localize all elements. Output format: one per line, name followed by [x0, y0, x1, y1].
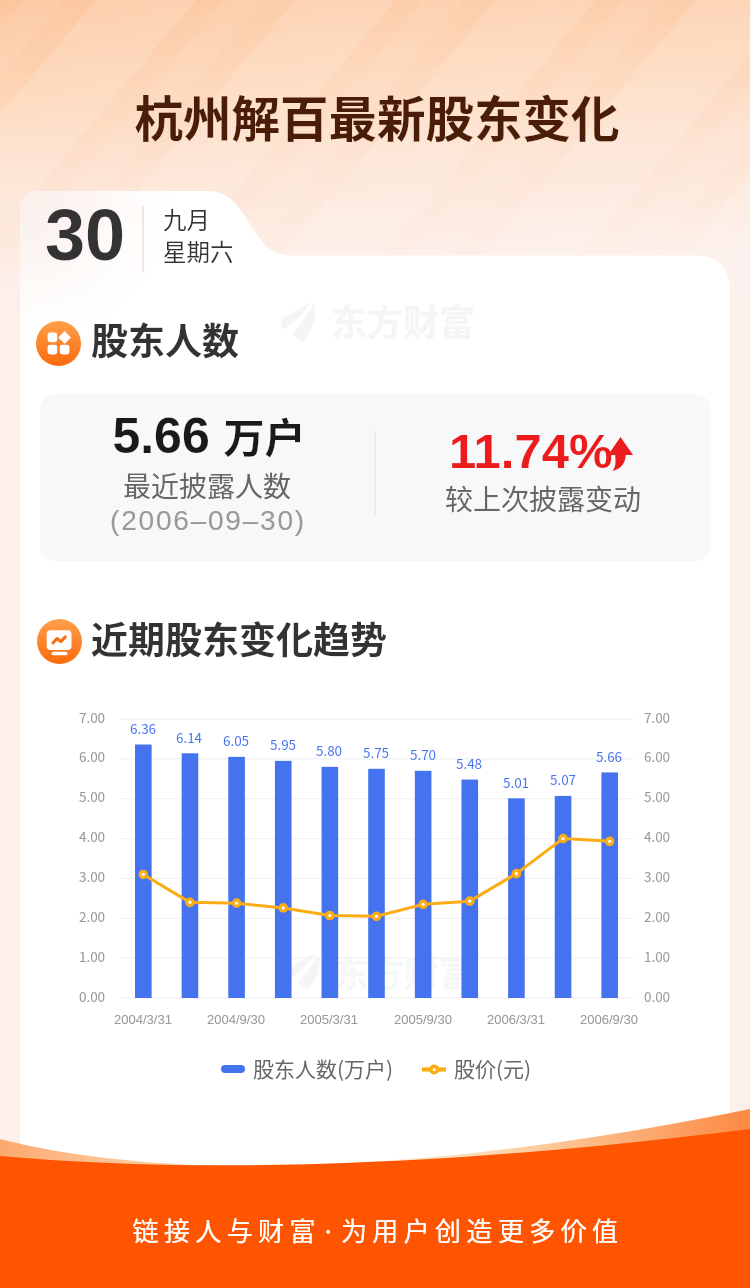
staticText: 股东人数	[91, 312, 239, 366]
staticText: 4.00	[627, 826, 687, 846]
staticText: 6.00	[627, 746, 687, 766]
staticText: 7.00	[62, 707, 122, 727]
staticText: 近期股东变化趋势	[91, 611, 387, 665]
staticText: 2006/9/30	[549, 1012, 669, 1027]
staticText: 2005/3/31	[269, 1012, 389, 1027]
staticText: 5.00	[627, 786, 687, 806]
staticText: 30	[45, 195, 126, 275]
staticText: 2006/3/31	[456, 1012, 576, 1027]
staticText: 6.05	[201, 730, 271, 750]
staticText: 0.00	[627, 986, 687, 1006]
staticText: 5.66 万户	[39, 405, 379, 464]
staticText: 2004/3/31	[83, 1012, 203, 1027]
staticText: 11.74%	[449, 424, 613, 479]
staticText: 2.00	[62, 906, 122, 926]
staticText: 较上次披露变动	[373, 478, 713, 519]
other: 股东人数图标	[36, 321, 81, 366]
staticText: 5.07	[528, 769, 598, 789]
staticText: 7.00	[627, 707, 687, 727]
staticText: 6.14	[154, 727, 224, 747]
staticText: 5.70	[388, 744, 458, 764]
staticText: 2004/9/30	[176, 1012, 296, 1027]
staticText: 链接人与财富·为用户创造更多价值	[28, 1211, 728, 1249]
staticText: 星期六	[163, 234, 234, 268]
other: 趋势图标	[37, 619, 82, 664]
button[interactable]: 趋势图标	[37, 609, 390, 666]
staticText: 6.36	[108, 718, 178, 738]
staticText: 5.95	[248, 734, 318, 754]
staticText: (2006–09–30)	[38, 505, 378, 536]
staticText: 1.00	[62, 946, 122, 966]
staticText: 5.75	[341, 742, 411, 762]
staticText: 3.00	[627, 866, 687, 886]
staticText: 0.00	[62, 986, 122, 1006]
staticText: 5.00	[62, 786, 122, 806]
staticText: 东方财富	[331, 294, 476, 346]
staticText: 5.66	[574, 746, 644, 766]
staticText: 1.00	[627, 946, 687, 966]
staticText: 东方财富	[334, 946, 475, 997]
staticText: 杭州解百最新股东变化	[27, 81, 727, 151]
staticText: 6.00	[62, 746, 122, 766]
button[interactable]: 股东人数图标	[36, 310, 242, 367]
staticText: 2005/9/30	[363, 1012, 483, 1027]
staticText: 2.00	[627, 906, 687, 926]
staticText: 4.00	[62, 826, 122, 846]
staticText: 5.80	[294, 740, 364, 760]
staticText: 5.01	[481, 772, 551, 792]
staticText: 九月	[163, 202, 210, 236]
staticText: 最近披露人数	[37, 465, 377, 506]
staticText: 3.00	[62, 866, 122, 886]
staticText: 股价(元)	[454, 1053, 532, 1083]
staticText: 5.48	[434, 753, 504, 773]
staticText: 股东人数(万户)	[253, 1053, 394, 1083]
